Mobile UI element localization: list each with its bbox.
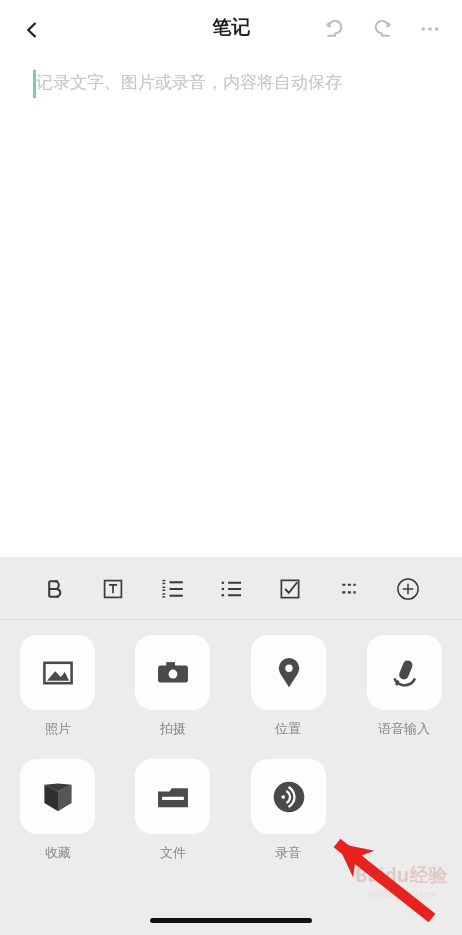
staticText: 录音 bbox=[275, 844, 301, 860]
button[interactable]: Divider bbox=[329, 569, 369, 609]
staticText: 收藏 bbox=[45, 844, 71, 860]
button[interactable]: Bulleted list bbox=[211, 569, 251, 609]
button[interactable]: More options bbox=[409, 8, 451, 50]
button[interactable]: 语音输入 bbox=[346, 635, 462, 736]
button[interactable]: Redo bbox=[362, 8, 402, 48]
button[interactable]: 收藏 bbox=[0, 759, 115, 860]
staticText: 照片 bbox=[45, 720, 71, 736]
button[interactable]: Insert bbox=[388, 569, 428, 609]
staticText: 文件 bbox=[160, 844, 186, 860]
staticText: jingyan.baidu.com bbox=[367, 888, 437, 899]
button[interactable]: 位置 bbox=[230, 635, 346, 736]
button[interactable]: Back bbox=[10, 8, 54, 52]
button[interactable]: Text style bbox=[93, 569, 133, 609]
staticText: 记录文字、图片或录音，内容将自动保存 bbox=[36, 72, 342, 93]
button[interactable]: 文件 bbox=[115, 759, 230, 860]
button[interactable]: Bold bbox=[34, 569, 74, 609]
button[interactable]: 拍摄 bbox=[115, 635, 230, 736]
button[interactable]: Numbered list bbox=[152, 569, 192, 609]
staticText: 笔记 bbox=[212, 16, 250, 40]
staticText: Baidu经验 bbox=[355, 862, 448, 888]
button[interactable]: 照片 bbox=[0, 635, 115, 736]
staticText: 位置 bbox=[275, 720, 301, 736]
button[interactable]: Checklist bbox=[270, 569, 310, 609]
button[interactable]: Undo bbox=[315, 8, 355, 48]
staticText: 语音输入 bbox=[378, 720, 430, 736]
staticText: 拍摄 bbox=[160, 720, 186, 736]
button[interactable]: 录音 bbox=[230, 759, 346, 860]
